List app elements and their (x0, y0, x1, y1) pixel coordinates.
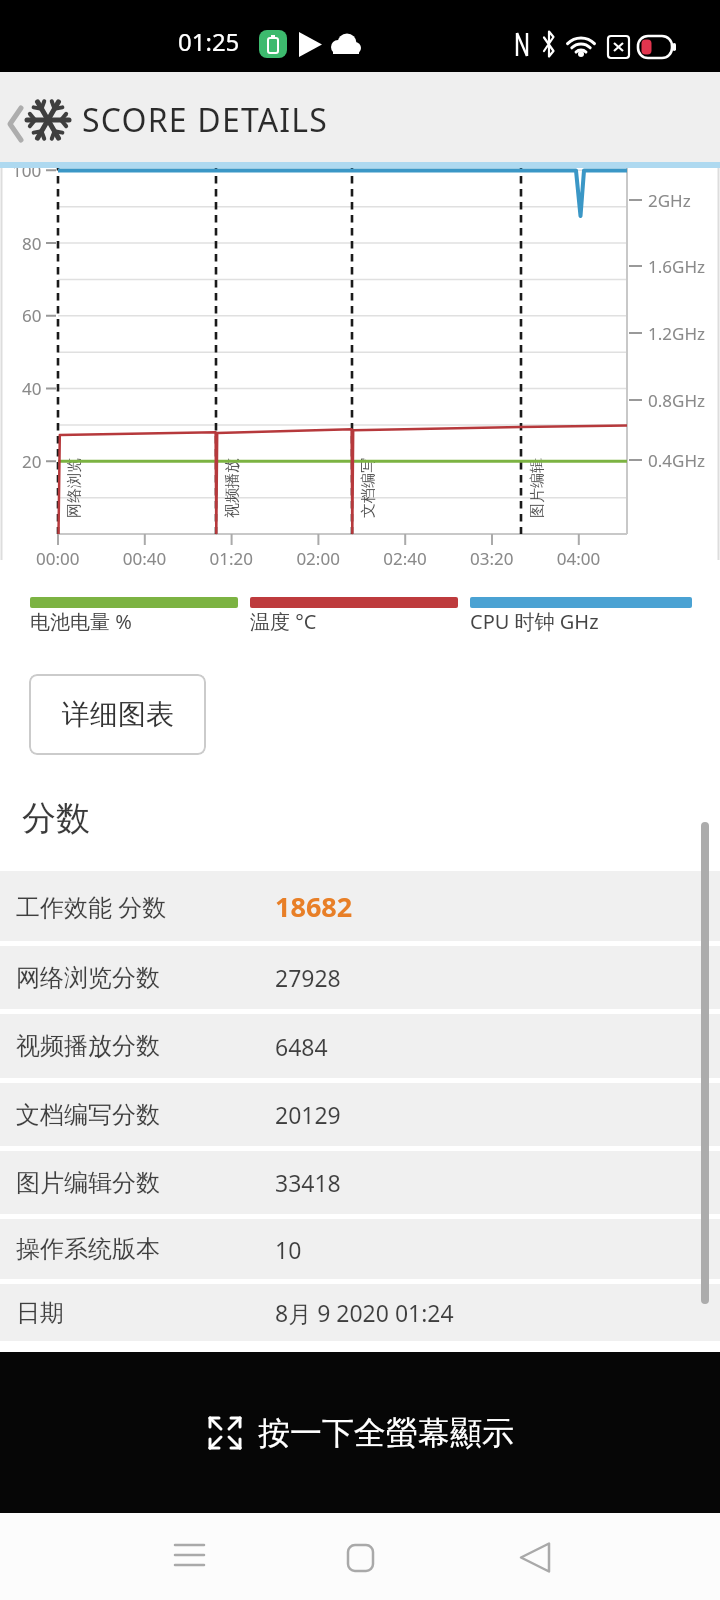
staticText: 10 (275, 1234, 302, 1265)
staticText: 27928 (275, 962, 341, 993)
button[interactable] (160, 1533, 220, 1583)
staticText: 操作系统版本 (16, 1234, 160, 1264)
staticText: 电池电量 % (30, 608, 132, 635)
staticText: 图片编辑分数 (16, 1168, 160, 1198)
staticText: 分数 (22, 797, 90, 840)
button[interactable] (332, 1533, 392, 1583)
staticText: 日期 (16, 1298, 64, 1328)
staticText: 按一下全螢幕顯示 (258, 1413, 514, 1453)
button[interactable]: 详细图表 (29, 674, 206, 755)
button[interactable]: 按一下全螢幕顯示 (0, 1352, 720, 1513)
staticText: 详细图表 (62, 697, 174, 732)
staticText: CPU 时钟 GHz (470, 608, 599, 635)
staticText: 01:25 (178, 25, 240, 58)
staticText: 视频播放分数 (16, 1031, 160, 1061)
staticText: SCORE DETAILS (82, 98, 329, 142)
staticText: 6484 (275, 1031, 328, 1062)
staticText: 网络浏览分数 (16, 963, 160, 993)
button[interactable]: 操作系统版本 (0, 1219, 720, 1279)
button[interactable]: 工作效能 分数 (0, 871, 720, 941)
staticText: 20129 (275, 1099, 341, 1130)
button[interactable] (0, 72, 720, 162)
staticText: 18682 (275, 888, 353, 925)
staticText: 工作效能 分数 (16, 890, 167, 923)
button[interactable] (505, 1533, 565, 1583)
button[interactable]: 文档编写分数 (0, 1083, 720, 1146)
button[interactable]: 视频播放分数 (0, 1014, 720, 1078)
staticText: 文档编写分数 (16, 1100, 160, 1130)
staticText: 33418 (275, 1167, 341, 1198)
button[interactable]: 图片编辑分数 (0, 1151, 720, 1214)
staticText: 8月 9 2020 01:24 (275, 1297, 454, 1328)
staticText: 温度 °C (250, 608, 317, 635)
button[interactable]: 日期 (0, 1284, 720, 1341)
button[interactable]: 网络浏览分数 (0, 946, 720, 1009)
